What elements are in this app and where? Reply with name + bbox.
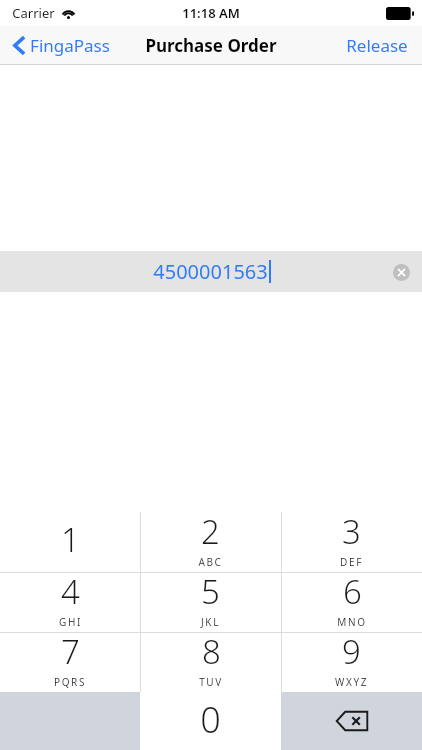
staticText: ABC	[198, 555, 223, 569]
staticText: TUV	[199, 675, 223, 689]
button[interactable]: 6	[281, 572, 422, 632]
button[interactable]: 5	[140, 572, 281, 632]
staticText: WXYZ	[335, 675, 368, 689]
button[interactable]: 4	[0, 572, 140, 632]
staticText: GHI	[59, 615, 82, 629]
staticText: 5	[201, 569, 220, 614]
staticText: MNO	[337, 615, 367, 629]
staticText: 3	[342, 509, 361, 554]
staticText: 2	[201, 509, 220, 554]
button[interactable]: FingaPass	[0, 30, 120, 61]
button[interactable]: 0	[140, 692, 281, 750]
staticText: Release	[346, 34, 408, 57]
button[interactable]: Clear text	[388, 259, 414, 285]
staticText: 6	[343, 569, 362, 614]
staticText: Carrier	[12, 4, 55, 22]
staticText: 1	[61, 517, 80, 562]
button[interactable]: 1	[0, 512, 140, 572]
staticText: FingaPass	[30, 34, 110, 57]
staticText: JKL	[201, 615, 220, 629]
button[interactable]: Release	[332, 28, 422, 63]
button[interactable]: Delete	[281, 692, 422, 750]
button[interactable]: 9	[281, 632, 422, 692]
button[interactable]: 8	[140, 632, 281, 692]
staticText: Purchase Order	[145, 34, 277, 57]
staticText: PQRS	[54, 675, 86, 689]
staticText: 4	[61, 569, 80, 614]
staticText: 8	[202, 629, 221, 674]
button[interactable]: 4500001563	[0, 251, 422, 292]
staticText: 9	[342, 629, 361, 674]
staticText: 11:18 AM	[182, 4, 240, 22]
staticText: DEF	[340, 555, 363, 569]
staticText: 7	[61, 629, 80, 674]
staticText: 4500001563	[153, 258, 268, 285]
button[interactable]: 2	[140, 512, 281, 572]
button[interactable]: 7	[0, 632, 140, 692]
button[interactable]: 3	[281, 512, 422, 572]
staticText: 0	[200, 695, 221, 744]
